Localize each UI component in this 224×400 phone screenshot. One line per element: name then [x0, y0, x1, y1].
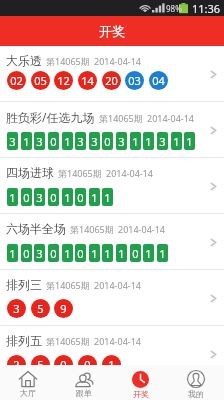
staticText: 05 [34, 73, 47, 88]
staticText: 2014-04-14 [94, 335, 141, 347]
staticText: 1 [145, 246, 152, 261]
staticText: 0 [50, 134, 57, 149]
staticText: 3 [77, 134, 84, 149]
staticText: 1 [186, 134, 193, 149]
staticText: 大乐透 [6, 53, 42, 68]
staticText: 20 [105, 73, 118, 88]
staticText: 1 [145, 134, 152, 149]
staticText: 1 [118, 246, 125, 261]
staticText: 1 [132, 134, 139, 149]
staticText: 第14065期 [46, 55, 90, 67]
staticText: 跟单 [76, 388, 92, 398]
staticText: 0 [23, 246, 30, 261]
staticText: 1 [104, 246, 111, 261]
staticText: 1 [108, 357, 115, 372]
staticText: 3 [91, 134, 98, 149]
staticText: 02 [10, 73, 23, 88]
staticText: 04 [152, 73, 165, 88]
staticText: 0 [23, 190, 30, 205]
staticText: 14 [81, 73, 94, 88]
staticText: 3 [9, 134, 16, 149]
staticText: 98% [166, 3, 182, 14]
staticText: 12 [57, 73, 70, 88]
staticText: 5 [37, 357, 44, 372]
staticText: 0 [84, 357, 91, 372]
staticText: 0 [77, 190, 84, 205]
staticText: 第14065期 [46, 279, 90, 291]
staticText: 03 [128, 73, 141, 88]
staticText: 1 [159, 246, 166, 261]
staticText: 1 [9, 246, 16, 261]
staticText: 1 [64, 190, 71, 205]
staticText: 开奖 [133, 389, 149, 399]
staticText: 排列五 [6, 333, 42, 348]
button[interactable]: Home [0, 365, 56, 400]
staticText: 第14065期 [58, 167, 102, 179]
staticText: 3 [13, 301, 20, 316]
staticText: 四场进球 [6, 165, 54, 180]
staticText: 2 [13, 357, 20, 372]
button[interactable]: 排列五 [0, 326, 224, 382]
staticText: 0 [77, 246, 84, 261]
staticText: 第14065期 [99, 112, 143, 124]
staticText: 3 [159, 134, 166, 149]
button[interactable]: Profile [168, 365, 224, 400]
staticText: 1 [173, 134, 180, 149]
staticText: 1 [9, 190, 16, 205]
staticText: 1 [64, 134, 71, 149]
button[interactable]: Lottery results [112, 365, 168, 400]
staticText: 1 [91, 246, 98, 261]
button[interactable]: 六场半全场 [0, 214, 224, 270]
staticText: 5 [37, 301, 44, 316]
staticText: 胜负彩/任选九场 [6, 109, 95, 125]
staticText: 0 [50, 190, 57, 205]
staticText: 0 [104, 134, 111, 149]
staticText: 3 [36, 246, 43, 261]
staticText: 11:36 [192, 1, 221, 16]
staticText: 开奖 [99, 23, 125, 39]
staticText: 2014-04-14 [147, 112, 194, 124]
staticText: 第14065期 [70, 223, 114, 235]
staticText: 2014-04-14 [118, 223, 165, 235]
staticText: 3 [36, 190, 43, 205]
staticText: 0 [132, 246, 139, 261]
staticText: 2014-04-14 [106, 167, 153, 179]
staticText: 0 [50, 246, 57, 261]
staticText: 0 [60, 357, 67, 372]
staticText: 1 [23, 134, 30, 149]
staticText: 1 [64, 246, 71, 261]
staticText: 大厅 [20, 388, 36, 398]
staticText: 3 [36, 134, 43, 149]
staticText: 我的 [188, 389, 204, 399]
button[interactable]: 四场进球 [0, 158, 224, 214]
staticText: 3 [118, 134, 125, 149]
button[interactable]: Orders [56, 365, 112, 400]
staticText: 1 [104, 190, 111, 205]
button[interactable]: 胜负彩/任选九场 [0, 102, 224, 158]
staticText: 六场半全场 [6, 221, 66, 236]
staticText: 排列三 [6, 277, 42, 292]
button[interactable]: 排列三 [0, 270, 224, 326]
staticText: 1 [91, 190, 98, 205]
staticText: 9 [60, 301, 67, 316]
button[interactable]: 大乐透 [0, 46, 224, 102]
staticText: 2014-04-14 [94, 279, 141, 291]
staticText: 第14065期 [46, 335, 90, 347]
staticText: 2014-04-14 [94, 55, 141, 67]
